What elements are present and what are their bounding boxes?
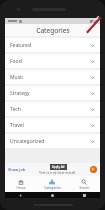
button[interactable]: Uncategorized [5, 134, 100, 148]
button[interactable]: Strategy [5, 86, 100, 100]
button[interactable]: Search [68, 176, 100, 192]
button[interactable]: Music [5, 70, 100, 84]
staticText: Uncategorized [10, 138, 45, 145]
staticText: Music [10, 74, 24, 81]
staticText: Show job [8, 167, 26, 172]
staticText: Food [10, 58, 22, 65]
staticText: Travel [10, 122, 24, 129]
staticText: Tech [10, 106, 21, 113]
staticText: Test is trial best install. [39, 170, 77, 175]
button[interactable]: Tech [5, 102, 100, 116]
button[interactable]: Categories [36, 176, 68, 192]
staticText: Strategy [10, 90, 30, 97]
button[interactable]: Home [5, 176, 36, 192]
button[interactable]: Show job [5, 163, 100, 176]
button[interactable]: Featured [5, 38, 100, 52]
staticText: Apply Ad [52, 165, 65, 169]
button[interactable]: Travel [5, 118, 100, 132]
staticText: Home [16, 186, 26, 190]
staticText: Categories [36, 26, 70, 35]
staticText: Categories [44, 186, 61, 190]
button[interactable]: Food [5, 54, 100, 68]
staticText: Search [79, 186, 90, 190]
staticText: Featured [10, 42, 31, 49]
